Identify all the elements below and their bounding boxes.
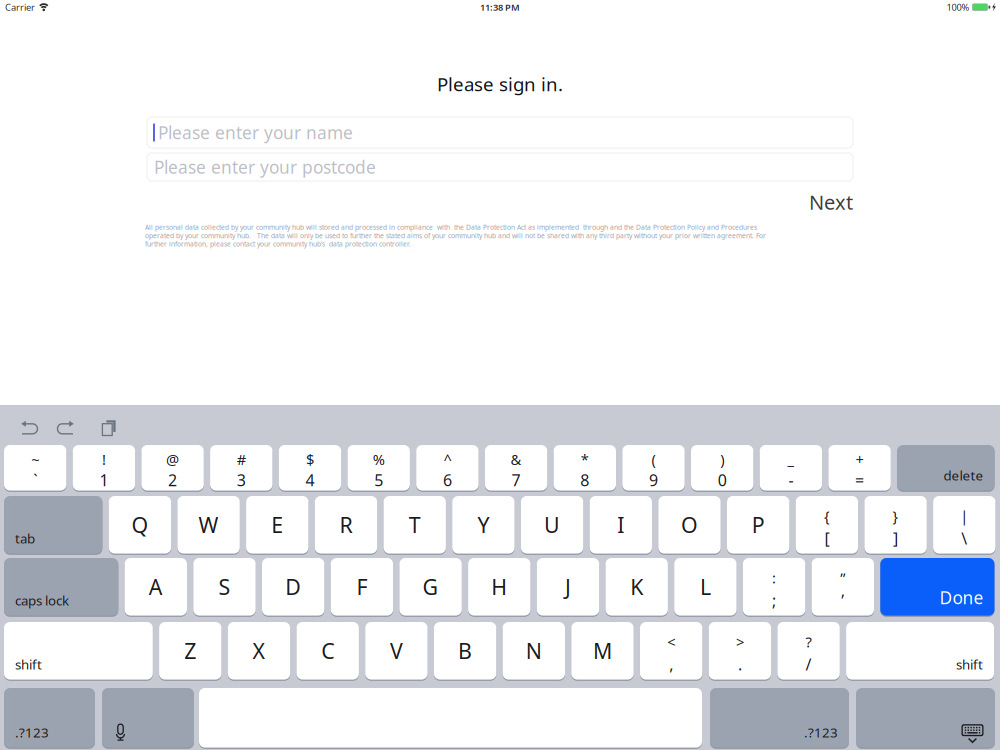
button[interactable]: P bbox=[727, 495, 789, 555]
button[interactable]: _ bbox=[760, 444, 822, 492]
button[interactable]: O bbox=[658, 495, 721, 555]
staticText: Next bbox=[809, 189, 853, 215]
button[interactable]: E bbox=[246, 495, 308, 555]
button[interactable]: @ bbox=[141, 444, 204, 492]
button[interactable]: > bbox=[709, 621, 771, 681]
staticText: Please enter your name bbox=[158, 121, 353, 144]
staticText: All personal data collected by your comm… bbox=[145, 223, 757, 232]
staticText: ^ bbox=[443, 449, 451, 469]
button[interactable]: Z bbox=[159, 621, 221, 681]
button[interactable]: K bbox=[605, 557, 668, 617]
staticText: Carrier bbox=[5, 1, 35, 13]
button[interactable]: R bbox=[315, 495, 377, 555]
button[interactable]: S bbox=[193, 557, 256, 617]
button[interactable]: ” bbox=[812, 557, 874, 617]
staticText: [ bbox=[824, 528, 829, 549]
staticText: Q bbox=[131, 511, 148, 539]
button[interactable]: } bbox=[864, 495, 927, 555]
button[interactable]: Done bbox=[880, 557, 994, 617]
button[interactable]: tab bbox=[4, 495, 102, 555]
staticText: caps lock bbox=[15, 591, 69, 609]
button[interactable]: delete bbox=[897, 444, 995, 492]
button[interactable]: { bbox=[796, 495, 858, 555]
button[interactable]: | bbox=[933, 495, 995, 555]
button[interactable]: D bbox=[262, 557, 324, 617]
staticText: N bbox=[526, 637, 542, 665]
staticText: . bbox=[738, 654, 742, 675]
button[interactable]: ! bbox=[73, 444, 135, 492]
staticText: ? bbox=[806, 632, 812, 651]
button[interactable]: Y bbox=[452, 495, 515, 555]
staticText: ` bbox=[33, 469, 37, 491]
staticText: S bbox=[218, 573, 230, 601]
button[interactable]: H bbox=[468, 557, 530, 617]
button[interactable]: ^ bbox=[416, 444, 479, 492]
staticText: C bbox=[321, 637, 334, 665]
button[interactable]: V bbox=[365, 621, 428, 681]
staticText: - bbox=[788, 469, 793, 491]
staticText: H bbox=[491, 573, 507, 601]
staticText: .?123 bbox=[15, 723, 49, 741]
staticText: 2 bbox=[168, 469, 177, 491]
staticText: I bbox=[617, 511, 624, 539]
staticText: tab bbox=[15, 529, 35, 547]
button[interactable]: J bbox=[537, 557, 599, 617]
button[interactable]: % bbox=[347, 444, 410, 492]
button[interactable]: G bbox=[399, 557, 462, 617]
button[interactable] bbox=[102, 687, 194, 749]
button[interactable]: shift bbox=[4, 621, 153, 681]
button[interactable]: .?123 bbox=[710, 687, 849, 749]
button[interactable]: ? bbox=[777, 621, 840, 681]
button[interactable]: A bbox=[125, 557, 187, 617]
staticText: & bbox=[511, 449, 522, 469]
staticText: * bbox=[581, 449, 589, 469]
button[interactable]: X bbox=[228, 621, 290, 681]
button[interactable]: : bbox=[743, 557, 805, 617]
button[interactable]: $ bbox=[279, 444, 341, 492]
button[interactable]: B bbox=[434, 621, 496, 681]
staticText: R bbox=[339, 511, 352, 539]
staticText: G bbox=[423, 573, 439, 601]
button[interactable] bbox=[856, 687, 995, 749]
staticText: M bbox=[593, 637, 612, 665]
button[interactable] bbox=[199, 687, 702, 749]
button[interactable]: ) bbox=[691, 444, 753, 492]
button[interactable]: # bbox=[210, 444, 272, 492]
button[interactable]: shift bbox=[846, 621, 994, 681]
button[interactable]: Redo bbox=[48, 405, 82, 444]
button[interactable]: Q bbox=[109, 495, 171, 555]
staticText: 5 bbox=[374, 469, 383, 491]
staticText: ’ bbox=[841, 590, 844, 611]
button[interactable]: + bbox=[828, 444, 891, 492]
button[interactable]: Next bbox=[809, 191, 853, 213]
staticText: Please enter your postcode bbox=[154, 155, 376, 178]
button[interactable]: N bbox=[503, 621, 565, 681]
button[interactable]: Undo bbox=[13, 405, 47, 444]
button[interactable]: T bbox=[383, 495, 446, 555]
button[interactable]: Paste bbox=[92, 405, 126, 444]
staticText: # bbox=[237, 449, 246, 469]
staticText: further information, please contact your… bbox=[145, 240, 411, 248]
button[interactable]: U bbox=[521, 495, 583, 555]
staticText: | bbox=[960, 506, 968, 525]
staticText: X bbox=[252, 637, 265, 665]
staticText: > bbox=[736, 632, 744, 651]
staticText: K bbox=[630, 573, 643, 601]
button[interactable]: L bbox=[674, 557, 737, 617]
button[interactable]: C bbox=[296, 621, 359, 681]
button[interactable]: .?123 bbox=[4, 687, 95, 749]
button[interactable]: ( bbox=[622, 444, 685, 492]
button[interactable]: F bbox=[331, 557, 393, 617]
button[interactable]: & bbox=[485, 444, 547, 492]
button[interactable]: I bbox=[590, 495, 652, 555]
staticText: 7 bbox=[512, 469, 521, 491]
staticText: shift bbox=[956, 655, 983, 673]
button[interactable]: W bbox=[177, 495, 240, 555]
staticText: _ bbox=[787, 449, 794, 469]
staticText: $ bbox=[306, 449, 314, 469]
button[interactable]: * bbox=[554, 444, 616, 492]
button[interactable]: M bbox=[571, 621, 634, 681]
button[interactable]: caps lock bbox=[4, 557, 118, 617]
button[interactable]: < bbox=[640, 621, 702, 681]
button[interactable]: ~ bbox=[4, 444, 66, 492]
